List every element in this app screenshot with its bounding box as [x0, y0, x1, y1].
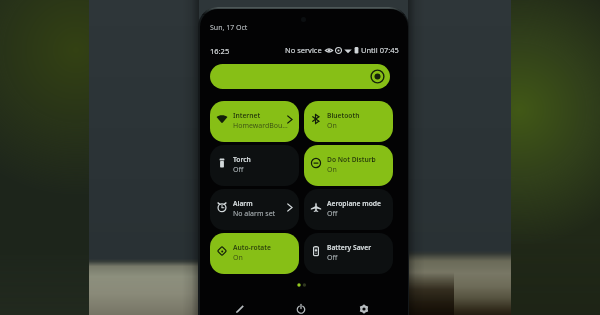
staticText: Torch — [233, 155, 251, 164]
staticText: Sun, 17 Oct — [210, 23, 248, 33]
staticText: Alarm — [233, 199, 253, 208]
button[interactable]: Settings — [351, 296, 377, 315]
button[interactable]: Brightness — [210, 64, 390, 89]
staticText: Do Not Disturb — [327, 155, 376, 164]
button[interactable]: Bluetooth — [304, 101, 393, 142]
staticText: Aeroplane mode — [327, 199, 381, 208]
button[interactable]: Torch — [210, 145, 299, 186]
button[interactable]: Battery Saver — [304, 233, 393, 274]
button[interactable]: Do Not Disturb — [304, 145, 393, 186]
staticText: Battery Saver — [327, 243, 372, 252]
button[interactable]: Power menu — [288, 296, 314, 315]
staticText: Off — [327, 253, 338, 263]
staticText: Bluetooth — [327, 111, 360, 120]
button[interactable]: Alarm — [210, 189, 299, 230]
staticText: HomewardBou… — [233, 121, 288, 131]
button[interactable]: Auto-rotate — [210, 233, 299, 274]
button[interactable]: Aeroplane mode — [304, 189, 393, 230]
button[interactable]: Internet — [210, 101, 299, 142]
staticText: Until 07:45 — [361, 45, 399, 55]
staticText: On — [327, 165, 337, 175]
staticText: Off — [233, 165, 244, 175]
staticText: Off — [327, 209, 338, 219]
staticText: No alarm set — [233, 209, 276, 219]
staticText: On — [233, 253, 243, 263]
staticText: Auto-rotate — [233, 243, 271, 252]
staticText: 16:25 — [210, 46, 230, 56]
staticText: No service — [285, 45, 322, 55]
staticText: On — [327, 121, 337, 131]
button[interactable]: Edit tiles — [227, 296, 253, 315]
staticText: Internet — [233, 111, 261, 120]
